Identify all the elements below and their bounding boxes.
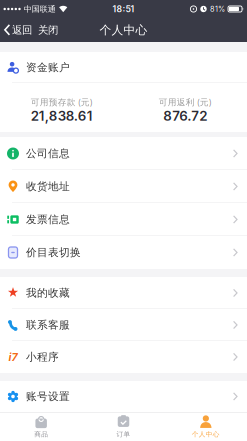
button[interactable]: 联系客服 (0, 309, 247, 341)
staticText: 发票信息 (26, 213, 70, 226)
staticText: 账号设置 (26, 390, 70, 403)
staticText: 中国联通 (24, 4, 56, 14)
staticText: 订单 (116, 430, 130, 439)
button[interactable]: 我的收藏 (0, 277, 247, 309)
staticText: 个人中心 (99, 23, 147, 37)
staticText: 价目表切换 (26, 246, 81, 259)
staticText: 联系客服 (26, 318, 70, 332)
staticText: 资金账户 (26, 61, 70, 74)
button[interactable]: 收货地址 (0, 170, 247, 203)
staticText: 18:51 (112, 4, 134, 14)
staticText: 关闭 (38, 23, 58, 36)
button[interactable]: 返回 (0, 18, 32, 42)
staticText: 可用返利 (元) (159, 97, 212, 108)
staticText: 商品 (34, 430, 48, 439)
staticText: 81% (210, 5, 225, 13)
staticText: 返回 (12, 23, 32, 36)
button[interactable]: 订单 (82, 413, 165, 441)
button[interactable]: 账号设置 (0, 381, 247, 412)
staticText: 个人中心 (192, 430, 220, 439)
staticText: 收货地址 (26, 180, 70, 193)
staticText: 可用预存款 (元) (31, 97, 93, 108)
staticText: 我的收藏 (26, 286, 70, 300)
staticText: 21,838.61 (31, 108, 93, 124)
staticText: 公司信息 (26, 147, 70, 160)
button[interactable]: 价目表切换 (0, 236, 247, 269)
button[interactable]: 个人中心 (165, 413, 247, 441)
button[interactable]: 公司信息 (0, 137, 247, 170)
button[interactable]: i7 (0, 341, 247, 373)
button[interactable]: 发票信息 (0, 203, 247, 236)
staticText: 小程序 (26, 350, 59, 364)
button[interactable]: 关闭 (32, 18, 58, 42)
button[interactable]: 商品 (0, 413, 82, 441)
button[interactable]: 资金账户 (0, 52, 247, 83)
staticText: i7 (8, 350, 17, 363)
staticText: 876.72 (163, 108, 207, 124)
